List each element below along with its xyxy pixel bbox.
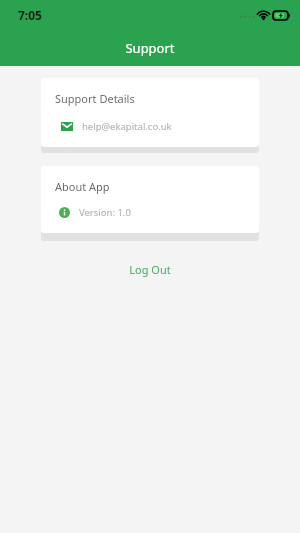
staticText: help@ekapital.co.uk — [82, 120, 172, 133]
staticText: Support Details — [55, 91, 135, 106]
staticText: About App — [55, 179, 110, 194]
staticText: 7:05 — [18, 7, 42, 23]
button[interactable]: Email — [55, 120, 245, 133]
other: Email — [61, 122, 73, 131]
staticText: Support — [125, 39, 175, 57]
other: Information — [59, 207, 70, 218]
staticText: Version: 1.0 — [79, 206, 131, 219]
button[interactable]: Log Out — [41, 255, 259, 283]
staticText: Log Out — [129, 262, 171, 277]
